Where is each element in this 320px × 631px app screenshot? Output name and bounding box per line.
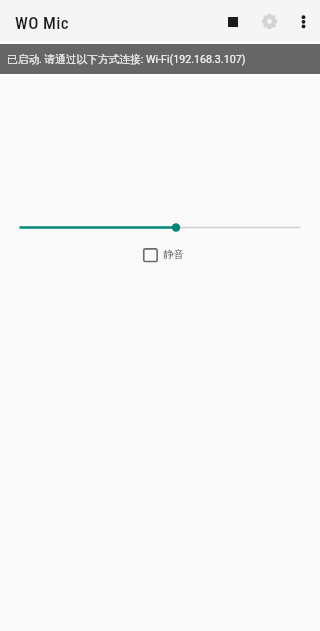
button[interactable]: Volume slider bbox=[4, 212, 316, 243]
staticText: 静音 bbox=[163, 248, 184, 261]
staticText: 已启动. 请通过以下方式连接: Wi-Fi(192.168.3.107) bbox=[7, 53, 246, 66]
button[interactable]: 静音 bbox=[142, 246, 184, 263]
button[interactable]: Stop bbox=[213, 0, 253, 42]
button[interactable]: More options bbox=[285, 0, 320, 42]
staticText: WO Mic bbox=[15, 13, 69, 33]
button[interactable]: Settings bbox=[249, 0, 289, 42]
